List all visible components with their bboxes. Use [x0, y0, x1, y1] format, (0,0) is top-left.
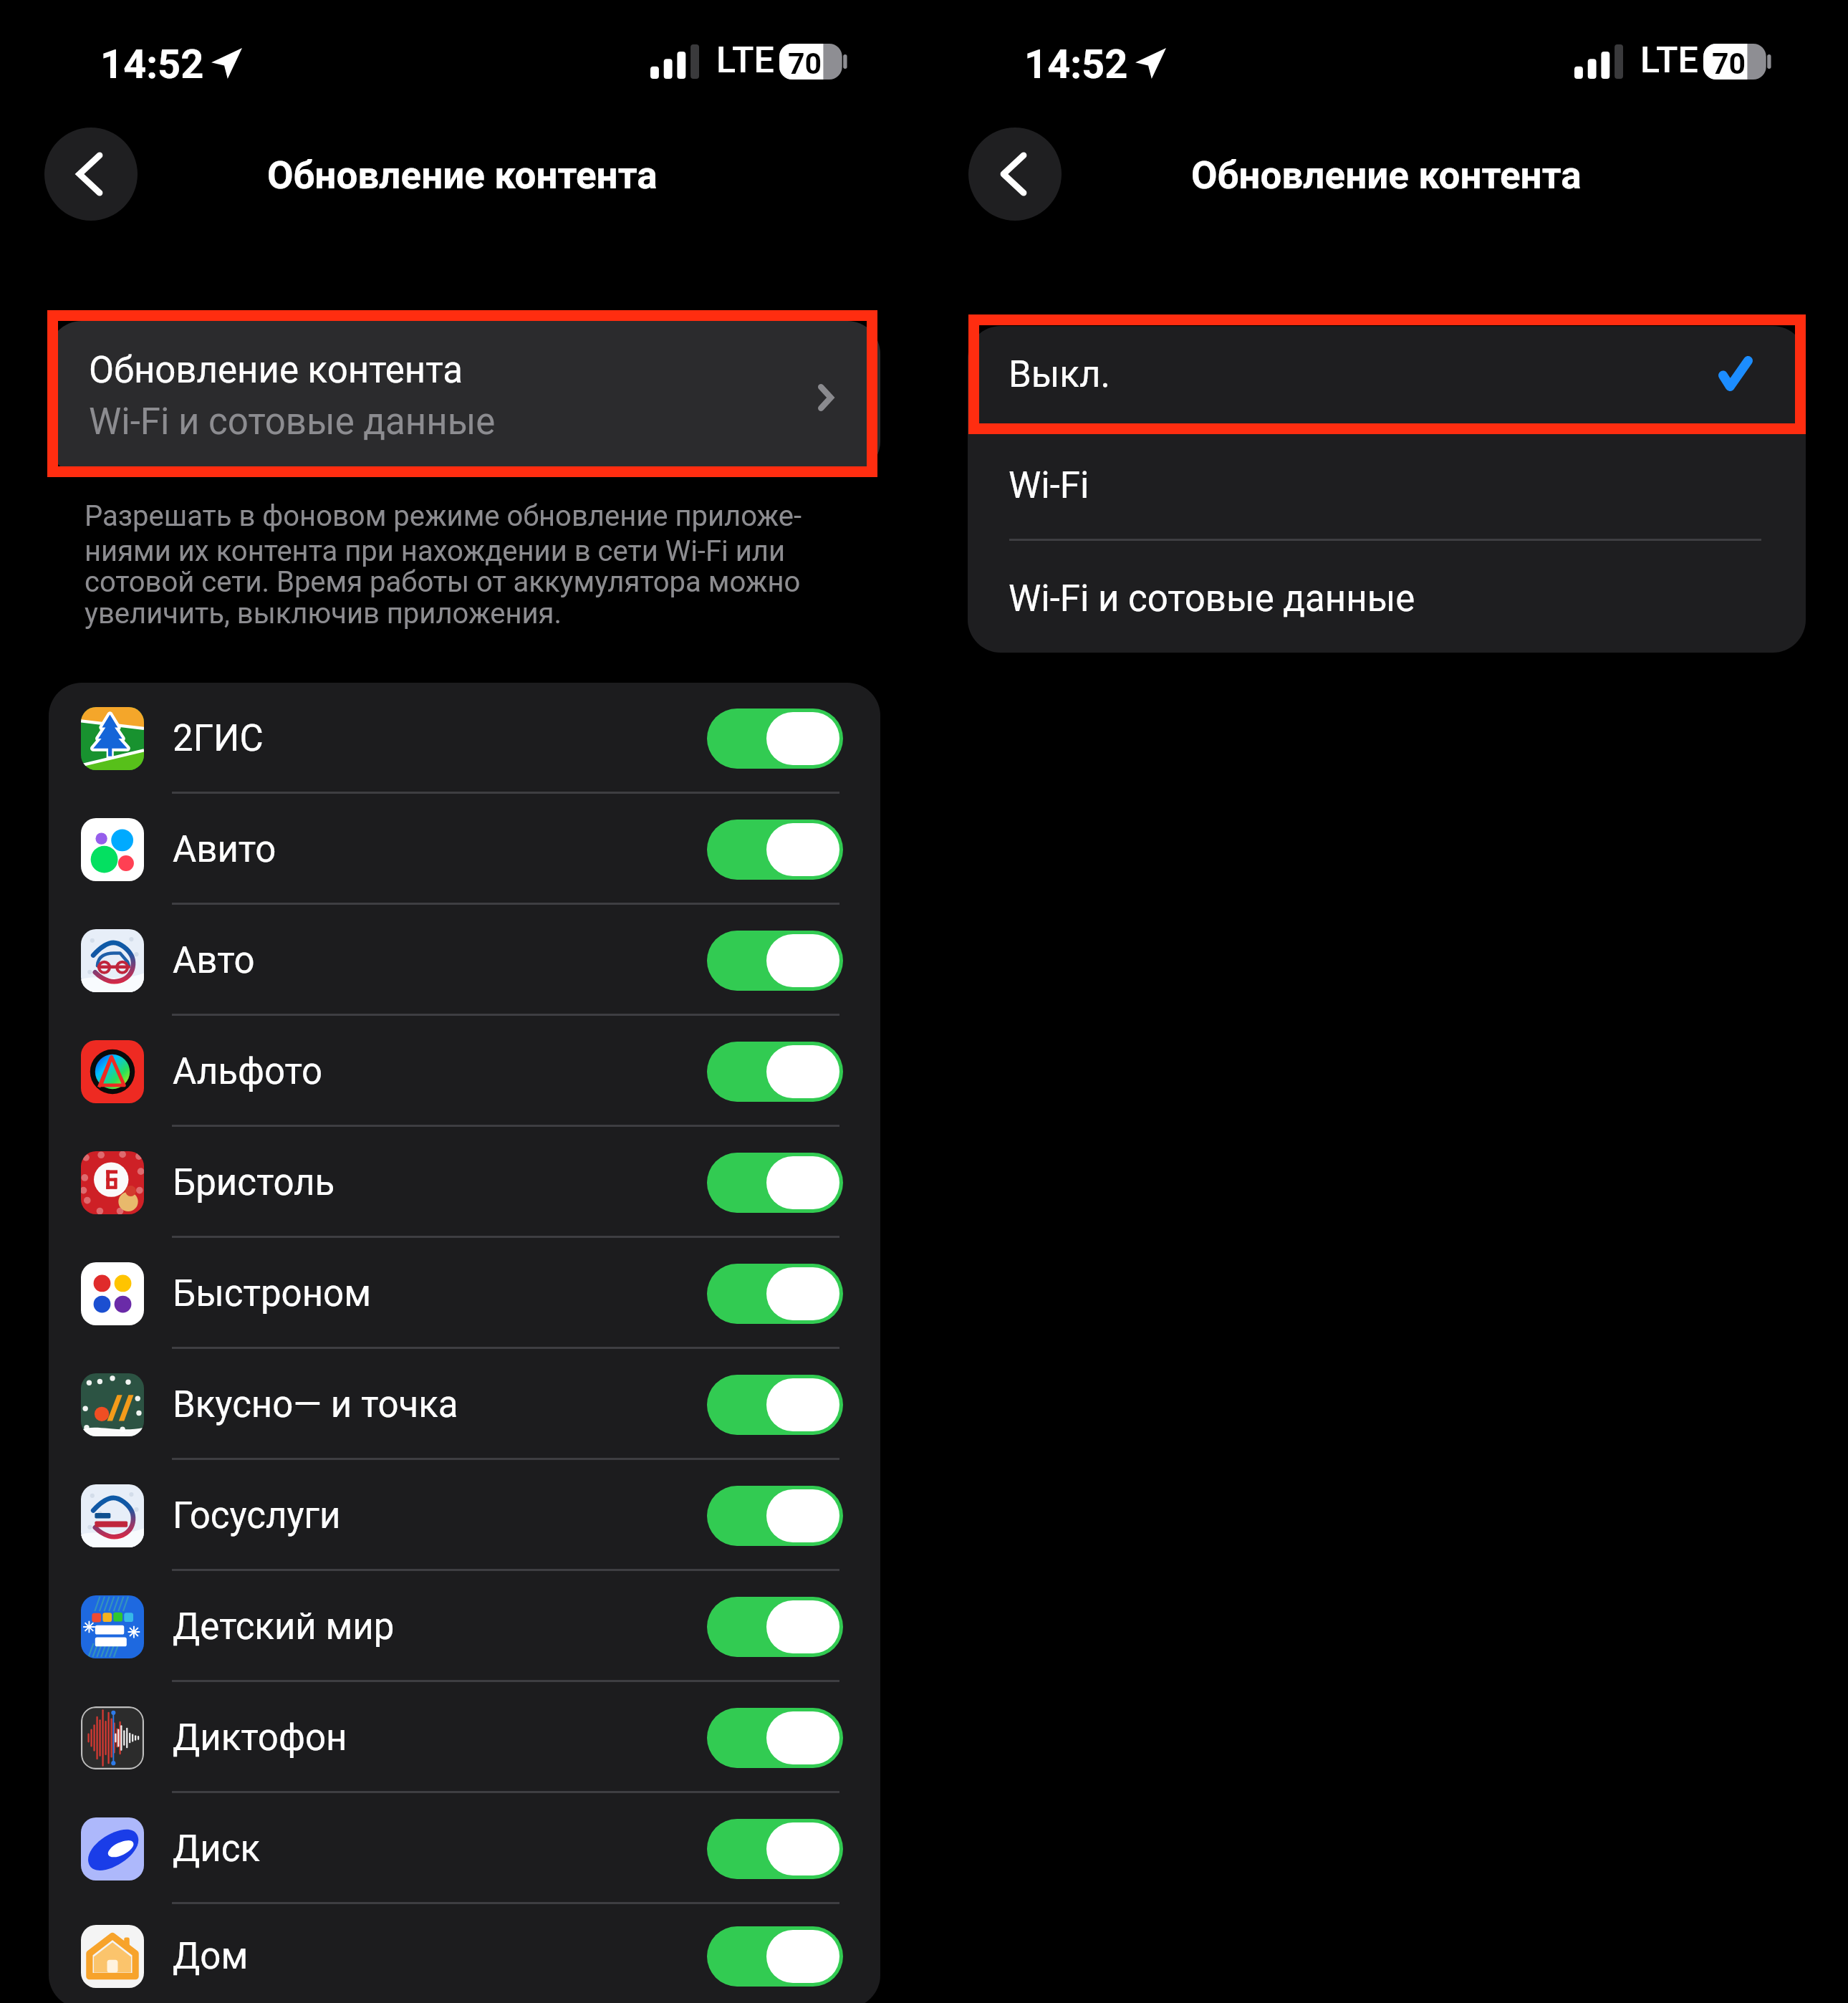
button[interactable]: Дом — [49, 1904, 880, 2003]
staticText: Обновление контента — [1191, 153, 1582, 198]
button[interactable]: Бристоль — [49, 1127, 880, 1238]
staticText: Детский мир — [173, 1605, 395, 1648]
button[interactable]: Toggle on — [707, 1042, 843, 1102]
staticText: Диктофон — [173, 1716, 347, 1759]
staticText: 14:52 — [1024, 41, 1128, 88]
button[interactable]: Toggle on — [707, 820, 843, 880]
staticText: 14:52 — [100, 41, 204, 88]
button[interactable]: Back — [968, 128, 1062, 221]
staticText: LTE — [1640, 39, 1698, 82]
button[interactable]: Авто — [49, 905, 880, 1016]
button[interactable]: Авито — [49, 794, 880, 905]
staticText: ниями их контента при нахождении в сети … — [85, 534, 785, 568]
staticText: Бристоль — [173, 1161, 335, 1204]
button[interactable]: Быстроном — [49, 1238, 880, 1349]
button[interactable]: Диктофон — [49, 1682, 880, 1793]
button[interactable]: Toggle on — [707, 1708, 843, 1768]
button[interactable]: Обновление контента — [49, 321, 880, 474]
button[interactable]: Toggle on — [707, 1375, 843, 1435]
button[interactable]: Wi-Fi и сотовые данные — [968, 540, 1806, 653]
staticText: Авито — [173, 828, 276, 871]
button[interactable]: Toggle on — [707, 1597, 843, 1657]
staticText: Быстроном — [173, 1272, 372, 1315]
staticText: 2ГИС — [173, 717, 264, 760]
staticText: Дом — [173, 1935, 249, 1978]
staticText: увеличить, выключив приложения. — [85, 597, 562, 630]
button[interactable]: 2ГИС — [49, 683, 880, 794]
staticText: Обновление контента — [89, 349, 463, 392]
staticText: 70 — [1712, 47, 1746, 81]
staticText: Wi-Fi — [1009, 464, 1089, 507]
staticText: 70 — [788, 47, 822, 81]
button[interactable]: Вкусно— и точка — [49, 1349, 880, 1460]
staticText: сотовой сети. Время работы от аккумулято… — [85, 565, 801, 599]
button[interactable]: Wi-Fi — [968, 429, 1806, 540]
staticText: Выкл. — [1009, 353, 1110, 396]
button[interactable]: Toggle on — [707, 1264, 843, 1324]
button[interactable]: Выкл. — [968, 326, 1806, 429]
staticText: Обновление контента — [267, 153, 658, 198]
button[interactable]: Toggle on — [707, 709, 843, 769]
button[interactable]: Детский мир — [49, 1571, 880, 1682]
button[interactable]: Toggle on — [707, 1819, 843, 1879]
staticText: Wi-Fi и сотовые данные — [89, 400, 496, 443]
staticText: Wi-Fi и сотовые данные — [1009, 577, 1415, 620]
button[interactable]: Toggle on — [707, 1486, 843, 1546]
staticText: Вкусно— и точка — [173, 1383, 458, 1426]
button[interactable]: Back — [44, 128, 138, 221]
button[interactable]: Toggle on — [707, 1153, 843, 1213]
button[interactable]: Toggle on — [707, 1926, 843, 1987]
staticText: Альфото — [173, 1050, 323, 1093]
staticText: Диск — [173, 1827, 261, 1870]
button[interactable]: Госуслуги — [49, 1460, 880, 1571]
staticText: Авто — [173, 939, 255, 982]
button[interactable]: Toggle on — [707, 931, 843, 991]
staticText: Разрешать в фоновом режиме обновление пр… — [85, 499, 802, 533]
staticText: Госуслуги — [173, 1494, 341, 1537]
button[interactable]: Диск — [49, 1793, 880, 1904]
staticText: LTE — [716, 39, 774, 82]
button[interactable]: Альфото — [49, 1016, 880, 1127]
